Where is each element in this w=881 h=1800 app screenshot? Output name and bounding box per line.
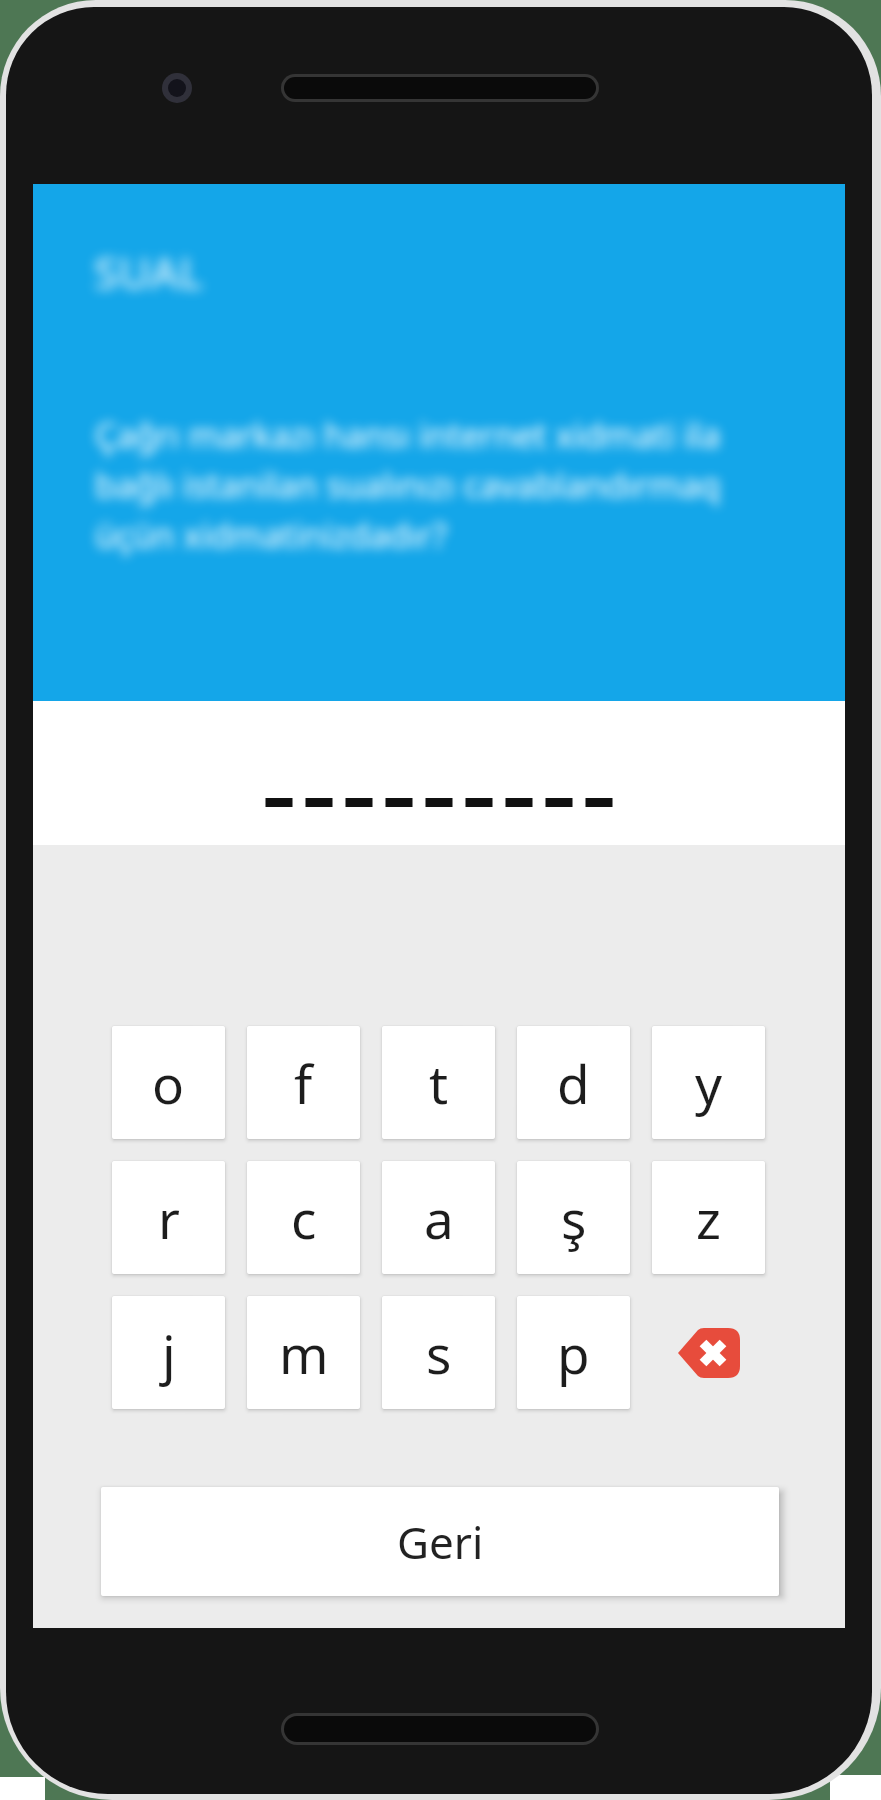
button[interactable]: j	[112, 1296, 225, 1409]
staticText: Çağrı markazı hansı internet xidmati ila…	[95, 412, 721, 558]
button[interactable]: p	[517, 1296, 630, 1409]
staticText: t	[429, 1047, 449, 1119]
button[interactable]: Geri	[101, 1487, 779, 1596]
button[interactable]: m	[247, 1296, 360, 1409]
button[interactable]: o	[112, 1026, 225, 1139]
staticText: SUAL	[94, 242, 203, 302]
staticText: f	[294, 1047, 313, 1119]
staticText: s	[426, 1317, 452, 1389]
button[interactable]	[652, 1296, 765, 1409]
staticText: a	[424, 1182, 454, 1254]
button[interactable]: c	[247, 1161, 360, 1274]
staticText: p	[557, 1317, 590, 1389]
button[interactable]: s	[382, 1296, 495, 1409]
button[interactable]: y	[652, 1026, 765, 1139]
button[interactable]: a	[382, 1161, 495, 1274]
staticText: ş	[561, 1182, 587, 1254]
button[interactable]: t	[382, 1026, 495, 1139]
button[interactable]: z	[652, 1161, 765, 1274]
button[interactable]: d	[517, 1026, 630, 1139]
button[interactable]: f	[247, 1026, 360, 1139]
staticText: c	[291, 1182, 317, 1254]
staticText: y	[695, 1047, 723, 1119]
button[interactable]: r	[112, 1161, 225, 1274]
staticText: j	[162, 1317, 176, 1389]
staticText: Geri	[397, 1512, 484, 1572]
staticText: o	[152, 1047, 185, 1119]
staticText: r	[158, 1182, 180, 1254]
button[interactable]: ş	[517, 1161, 630, 1274]
staticText: d	[557, 1047, 590, 1119]
staticText: m	[279, 1317, 329, 1389]
staticText: z	[696, 1182, 721, 1254]
